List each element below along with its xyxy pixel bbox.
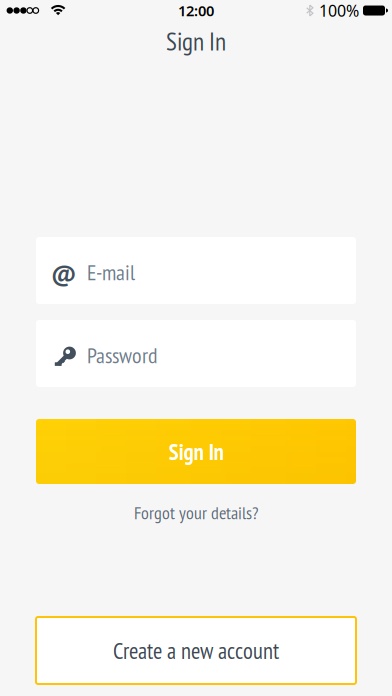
button[interactable]: @ <box>36 237 356 304</box>
staticText: Forgot your details? <box>134 501 258 524</box>
button[interactable]: Create a new account <box>36 617 356 684</box>
staticText: Sign In <box>168 437 223 466</box>
button[interactable]: Sign In <box>36 419 356 484</box>
staticText: 100% <box>319 0 359 21</box>
button[interactable]: Forgot your details? <box>134 501 258 524</box>
staticText: E-mail <box>87 258 135 286</box>
button[interactable]: Password <box>36 320 356 387</box>
staticText: Sign In <box>166 25 226 57</box>
staticText: 12:00 <box>178 1 214 20</box>
staticText: Password <box>87 341 158 369</box>
staticText: @ <box>51 257 76 288</box>
staticText: Create a new account <box>113 636 279 665</box>
